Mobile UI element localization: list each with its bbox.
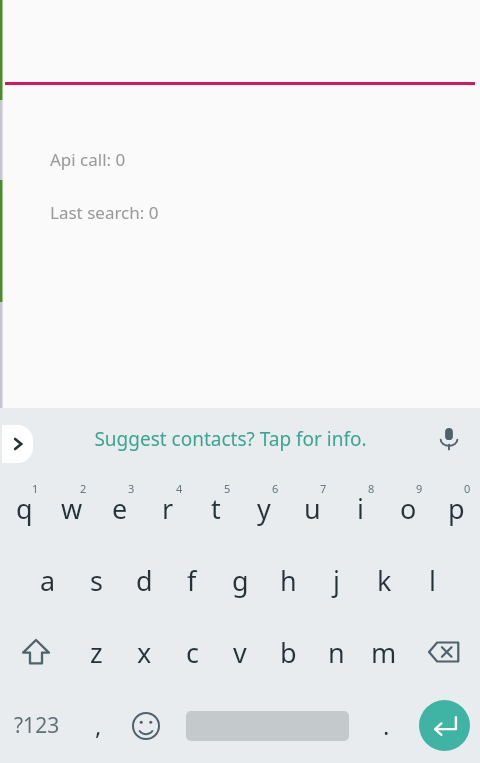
staticText: a	[40, 562, 56, 599]
button[interactable]: n	[312, 616, 360, 688]
button[interactable]: e	[96, 472, 144, 544]
staticText: m	[371, 634, 397, 671]
button[interactable]: i	[336, 472, 384, 544]
button[interactable]: Space	[170, 688, 364, 763]
button[interactable]: Emoji	[122, 688, 170, 763]
button[interactable]: g	[216, 544, 264, 616]
button[interactable]: d	[120, 544, 168, 616]
staticText: x	[137, 634, 152, 671]
button[interactable]: x	[120, 616, 168, 688]
button[interactable]: t	[192, 472, 240, 544]
staticText: 7	[320, 481, 327, 496]
staticText: j	[333, 562, 340, 599]
staticText: 8	[368, 481, 375, 496]
staticText: o	[400, 490, 417, 527]
staticText: 4	[176, 481, 183, 496]
staticText: k	[377, 562, 392, 599]
button[interactable]: Expand suggestions	[2, 425, 33, 463]
staticText: i	[357, 490, 364, 527]
staticText: v	[233, 634, 247, 671]
staticText: 6	[272, 481, 279, 496]
staticText: c	[186, 634, 199, 671]
staticText: b	[280, 634, 297, 671]
button[interactable]: z	[72, 616, 120, 688]
button[interactable]: k	[360, 544, 408, 616]
staticText: r	[162, 490, 174, 527]
staticText: Api call: 0	[50, 148, 126, 171]
staticText: n	[328, 634, 345, 671]
staticText: 3	[128, 481, 135, 496]
button[interactable]: j	[312, 544, 360, 616]
button[interactable]: Voice input	[428, 418, 470, 460]
staticText: g	[232, 562, 249, 599]
staticText: l	[429, 562, 436, 599]
staticText: Suggest contacts? Tap for info.	[94, 426, 367, 452]
button[interactable]: s	[72, 544, 120, 616]
staticText: p	[448, 490, 465, 527]
staticText: Last search: 0	[50, 201, 159, 224]
staticText: q	[16, 490, 33, 527]
button[interactable]: u	[288, 472, 336, 544]
button[interactable]: Enter	[419, 700, 470, 751]
staticText: ?123	[14, 711, 60, 740]
button[interactable]: Suggest contacts? Tap for info.	[40, 408, 420, 470]
button[interactable]: r	[144, 472, 192, 544]
staticText: y	[257, 490, 271, 527]
button[interactable]: y	[240, 472, 288, 544]
staticText: d	[136, 562, 153, 599]
button[interactable]: o	[384, 472, 432, 544]
staticText: s	[90, 562, 103, 599]
button[interactable]: b	[264, 616, 312, 688]
button[interactable]: h	[264, 544, 312, 616]
staticText: z	[90, 634, 103, 671]
button[interactable]: p	[432, 472, 480, 544]
staticText: t	[211, 490, 221, 527]
staticText: 9	[416, 481, 423, 496]
staticText: f	[187, 562, 197, 599]
button[interactable]: a	[24, 544, 72, 616]
staticText: 2	[80, 481, 87, 496]
button[interactable]: c	[168, 616, 216, 688]
button[interactable]: w	[48, 472, 96, 544]
staticText: .	[383, 709, 390, 742]
button[interactable]: m	[360, 616, 408, 688]
staticText: u	[304, 490, 321, 527]
staticText: ,	[95, 709, 102, 742]
button[interactable]: Backspace	[408, 616, 480, 688]
staticText: w	[61, 490, 83, 527]
button[interactable]: .	[364, 688, 408, 763]
staticText: h	[280, 562, 297, 599]
staticText: 5	[224, 481, 231, 496]
button[interactable]: v	[216, 616, 264, 688]
button[interactable]: q	[0, 472, 48, 544]
button[interactable]: ?123	[0, 688, 74, 763]
staticText: 1	[32, 481, 39, 496]
button[interactable]: f	[168, 544, 216, 616]
staticText: 0	[464, 481, 471, 496]
button[interactable]: l	[408, 544, 456, 616]
button[interactable]: ,	[74, 688, 122, 763]
button[interactable]: Shift	[0, 616, 72, 688]
staticText: e	[112, 490, 128, 527]
